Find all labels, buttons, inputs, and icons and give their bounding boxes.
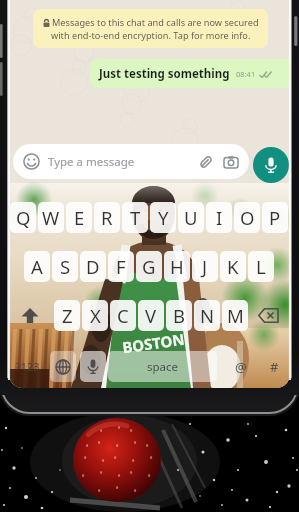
button[interactable]: S — [52, 251, 78, 282]
button[interactable]: M — [222, 300, 248, 331]
staticText: Messages to this chat and calls are now … — [52, 16, 259, 29]
staticText: G — [142, 254, 156, 279]
button[interactable]: K — [220, 251, 246, 282]
button[interactable]: ?123 — [11, 351, 45, 382]
button[interactable]: J — [192, 251, 218, 282]
staticText: R — [101, 205, 113, 230]
staticText: V — [145, 303, 157, 328]
button[interactable] — [50, 351, 76, 382]
staticText: M — [227, 303, 244, 328]
staticText: 08:41 — [236, 69, 256, 79]
button[interactable]: # — [261, 351, 288, 382]
staticText: A — [31, 254, 43, 279]
staticText: S — [60, 254, 71, 279]
button[interactable]: E — [66, 202, 92, 233]
button[interactable]: Q — [10, 202, 36, 233]
button[interactable]: V — [138, 300, 164, 331]
button[interactable]: O — [234, 202, 260, 233]
button[interactable]: Y — [150, 202, 176, 233]
staticText: W — [42, 205, 60, 230]
staticText: P — [269, 205, 281, 230]
button[interactable]: Type a message — [13, 144, 249, 179]
button[interactable]: H — [164, 251, 190, 282]
button[interactable]: G — [136, 251, 162, 282]
staticText: O — [240, 205, 255, 230]
button[interactable] — [80, 351, 106, 382]
staticText: N — [200, 303, 215, 328]
button[interactable]: A — [24, 251, 50, 282]
staticText: I — [216, 205, 223, 230]
button[interactable] — [251, 300, 285, 331]
staticText: @ — [235, 358, 247, 376]
staticText: Just testing something — [99, 66, 230, 82]
button[interactable]: Just testing something — [90, 59, 290, 88]
staticText: Z — [62, 303, 73, 328]
staticText: D — [86, 254, 100, 279]
button[interactable]: I — [206, 202, 232, 233]
button[interactable]: Messages to this chat and calls are now … — [33, 9, 268, 48]
button[interactable]: F — [108, 251, 134, 282]
staticText: K — [227, 254, 239, 279]
staticText: F — [116, 254, 126, 279]
button[interactable]: U — [178, 202, 204, 233]
button[interactable]: W — [38, 202, 64, 233]
button[interactable]: X — [82, 300, 108, 331]
staticText: B — [173, 303, 186, 328]
button[interactable]: L — [248, 251, 274, 282]
staticText: ?123 — [16, 359, 40, 374]
staticText: BOSTON — [121, 329, 186, 357]
button[interactable]: C — [110, 300, 136, 331]
button[interactable]: @ — [224, 351, 258, 382]
staticText: with end-to-end encryption. Tap for more… — [51, 29, 251, 42]
staticText: T — [130, 205, 141, 230]
button[interactable]: R — [94, 202, 120, 233]
button[interactable]: N — [194, 300, 220, 331]
staticText: H — [170, 254, 184, 279]
staticText: C — [117, 303, 129, 328]
staticText: Y — [158, 205, 169, 230]
button[interactable]: space — [108, 351, 217, 382]
button[interactable]: T — [122, 202, 148, 233]
button[interactable]: Z — [54, 300, 80, 331]
staticText: E — [74, 205, 85, 230]
button[interactable] — [253, 147, 289, 183]
button[interactable]: D — [80, 251, 106, 282]
staticText: J — [202, 254, 208, 279]
button[interactable] — [223, 154, 239, 170]
staticText: U — [184, 205, 198, 230]
button[interactable]: P — [262, 202, 288, 233]
staticText: space — [147, 359, 179, 375]
staticText: Q — [16, 205, 31, 230]
button[interactable]: B — [166, 300, 192, 331]
button[interactable] — [13, 300, 47, 331]
staticText: X — [90, 303, 101, 328]
staticText: Type a message — [48, 154, 135, 170]
staticText: L — [256, 254, 266, 279]
staticText: # — [270, 358, 279, 376]
button[interactable] — [198, 154, 214, 170]
